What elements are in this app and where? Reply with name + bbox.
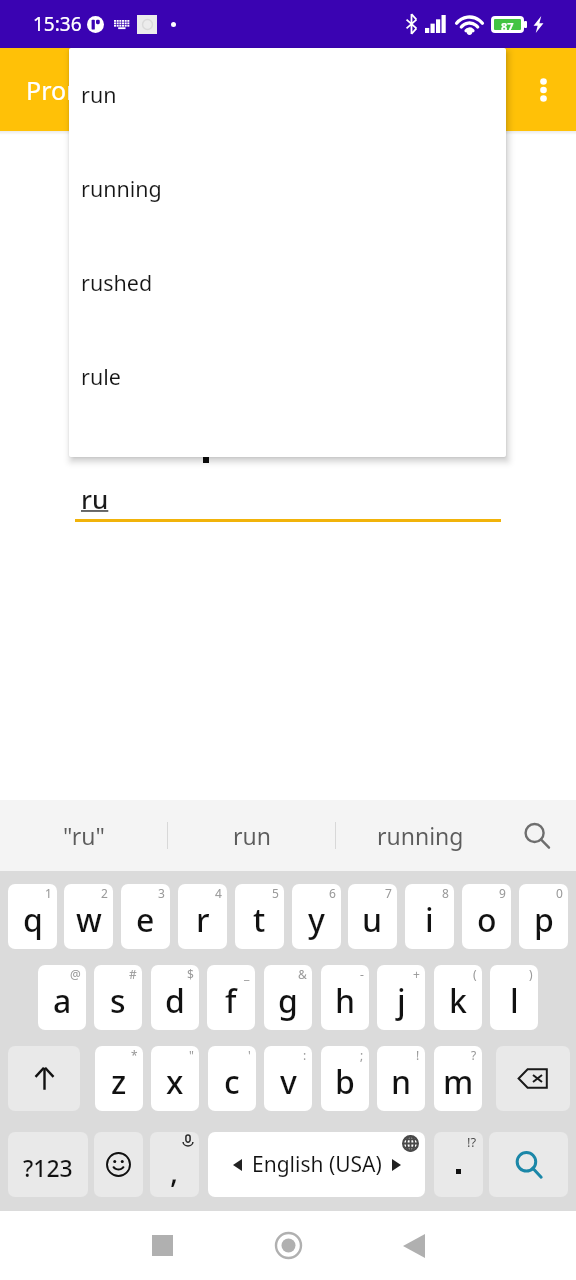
button[interactable]: run bbox=[168, 800, 336, 871]
button[interactable]: m bbox=[434, 1046, 482, 1111]
staticText: ?123 bbox=[23, 1152, 73, 1183]
button[interactable]: Comma bbox=[150, 1132, 199, 1197]
staticText: c bbox=[224, 1060, 240, 1104]
staticText: 0 bbox=[556, 885, 563, 901]
staticText: p bbox=[534, 898, 554, 942]
staticText: v bbox=[280, 1060, 297, 1104]
button[interactable]: Shift bbox=[8, 1046, 80, 1111]
button[interactable]: x bbox=[151, 1046, 199, 1111]
staticText: "ru" bbox=[63, 820, 105, 851]
button[interactable]: n bbox=[377, 1046, 425, 1111]
staticText: running bbox=[81, 174, 162, 203]
staticText: 3 bbox=[158, 885, 165, 901]
staticText: 9 bbox=[499, 885, 506, 901]
staticText: o bbox=[477, 898, 497, 942]
staticText: !? bbox=[467, 1133, 477, 1151]
button[interactable]: f bbox=[207, 965, 255, 1030]
button[interactable]: c bbox=[208, 1046, 256, 1111]
staticText: j bbox=[397, 979, 406, 1023]
staticText: running bbox=[377, 820, 464, 851]
staticText: + bbox=[413, 966, 420, 982]
staticText: w bbox=[76, 898, 102, 942]
staticText: a bbox=[53, 979, 72, 1023]
staticText: z bbox=[111, 1060, 127, 1104]
staticText: q bbox=[23, 898, 43, 942]
button[interactable]: a bbox=[38, 965, 86, 1030]
staticText: rushed bbox=[81, 268, 153, 297]
button[interactable]: ?123 bbox=[8, 1132, 88, 1197]
staticText: m bbox=[443, 1060, 474, 1104]
staticText: f bbox=[225, 979, 237, 1023]
button[interactable]: i bbox=[405, 884, 454, 949]
staticText: x bbox=[166, 1060, 184, 1104]
staticText: * bbox=[131, 1047, 138, 1063]
staticText: i bbox=[425, 898, 434, 942]
button[interactable]: running bbox=[336, 800, 504, 871]
button[interactable]: l bbox=[490, 965, 538, 1030]
button[interactable]: h bbox=[321, 965, 369, 1030]
button[interactable]: More options bbox=[511, 48, 576, 131]
button[interactable]: Backspace bbox=[496, 1046, 570, 1111]
button[interactable]: p bbox=[519, 884, 568, 949]
staticText: l bbox=[510, 979, 519, 1023]
button[interactable]: w bbox=[64, 884, 113, 949]
button[interactable]: q bbox=[8, 884, 57, 949]
button[interactable]: Emoji bbox=[94, 1132, 143, 1197]
button[interactable]: t bbox=[235, 884, 284, 949]
button[interactable]: Recent apps bbox=[122, 1211, 202, 1280]
staticText: 2 bbox=[101, 885, 108, 901]
button[interactable]: r bbox=[178, 884, 227, 949]
staticText: r bbox=[196, 898, 210, 942]
staticText: t bbox=[253, 898, 266, 942]
staticText: ) bbox=[529, 966, 533, 982]
staticText: ' bbox=[248, 1047, 251, 1063]
button[interactable]: run bbox=[69, 48, 506, 141]
staticText: - bbox=[360, 966, 364, 982]
staticText: , bbox=[170, 1151, 179, 1192]
staticText: ? bbox=[471, 1047, 477, 1063]
button[interactable]: s bbox=[94, 965, 142, 1030]
staticText: English (USA) bbox=[252, 1150, 382, 1179]
staticText: n bbox=[391, 1060, 412, 1104]
staticText: # bbox=[129, 966, 137, 982]
staticText: h bbox=[335, 979, 356, 1023]
button[interactable]: rushed bbox=[69, 235, 506, 329]
button[interactable]: Search bbox=[489, 1132, 568, 1197]
staticText: run bbox=[233, 820, 271, 851]
button[interactable]: j bbox=[377, 965, 425, 1030]
button[interactable]: running bbox=[69, 141, 506, 235]
button[interactable]: rule bbox=[69, 329, 506, 423]
button[interactable]: o bbox=[462, 884, 511, 949]
button[interactable]: e bbox=[121, 884, 170, 949]
button[interactable]: z bbox=[95, 1046, 143, 1111]
staticText: ( bbox=[473, 966, 477, 982]
staticText: @ bbox=[70, 966, 81, 982]
button[interactable]: "ru" bbox=[0, 800, 168, 871]
staticText: ; bbox=[360, 1047, 364, 1063]
button[interactable]: d bbox=[151, 965, 199, 1030]
staticText: e bbox=[136, 898, 155, 942]
staticText: Pronunciation bbox=[26, 73, 191, 107]
staticText: run bbox=[81, 80, 117, 109]
button[interactable]: Back bbox=[374, 1211, 454, 1280]
button[interactable]: Home bbox=[248, 1211, 328, 1280]
staticText: $ bbox=[187, 966, 194, 982]
staticText: 7 bbox=[385, 885, 392, 901]
button[interactable]: u bbox=[348, 884, 397, 949]
staticText: u bbox=[362, 898, 383, 942]
button[interactable]: v bbox=[264, 1046, 312, 1111]
button[interactable]: Period bbox=[434, 1132, 483, 1197]
button[interactable]: g bbox=[264, 965, 312, 1030]
button[interactable]: k bbox=[434, 965, 482, 1030]
button[interactable]: Space bbox=[208, 1132, 425, 1197]
button[interactable]: b bbox=[321, 1046, 369, 1111]
staticText: : bbox=[303, 1047, 307, 1063]
staticText: y bbox=[308, 898, 325, 942]
button[interactable]: y bbox=[292, 884, 341, 949]
staticText: g bbox=[278, 979, 298, 1023]
staticText: b bbox=[335, 1060, 355, 1104]
staticText: _ bbox=[244, 966, 250, 982]
staticText: 1 bbox=[45, 885, 52, 901]
button[interactable]: Search suggestions bbox=[501, 800, 573, 871]
staticText: 6 bbox=[329, 885, 336, 901]
